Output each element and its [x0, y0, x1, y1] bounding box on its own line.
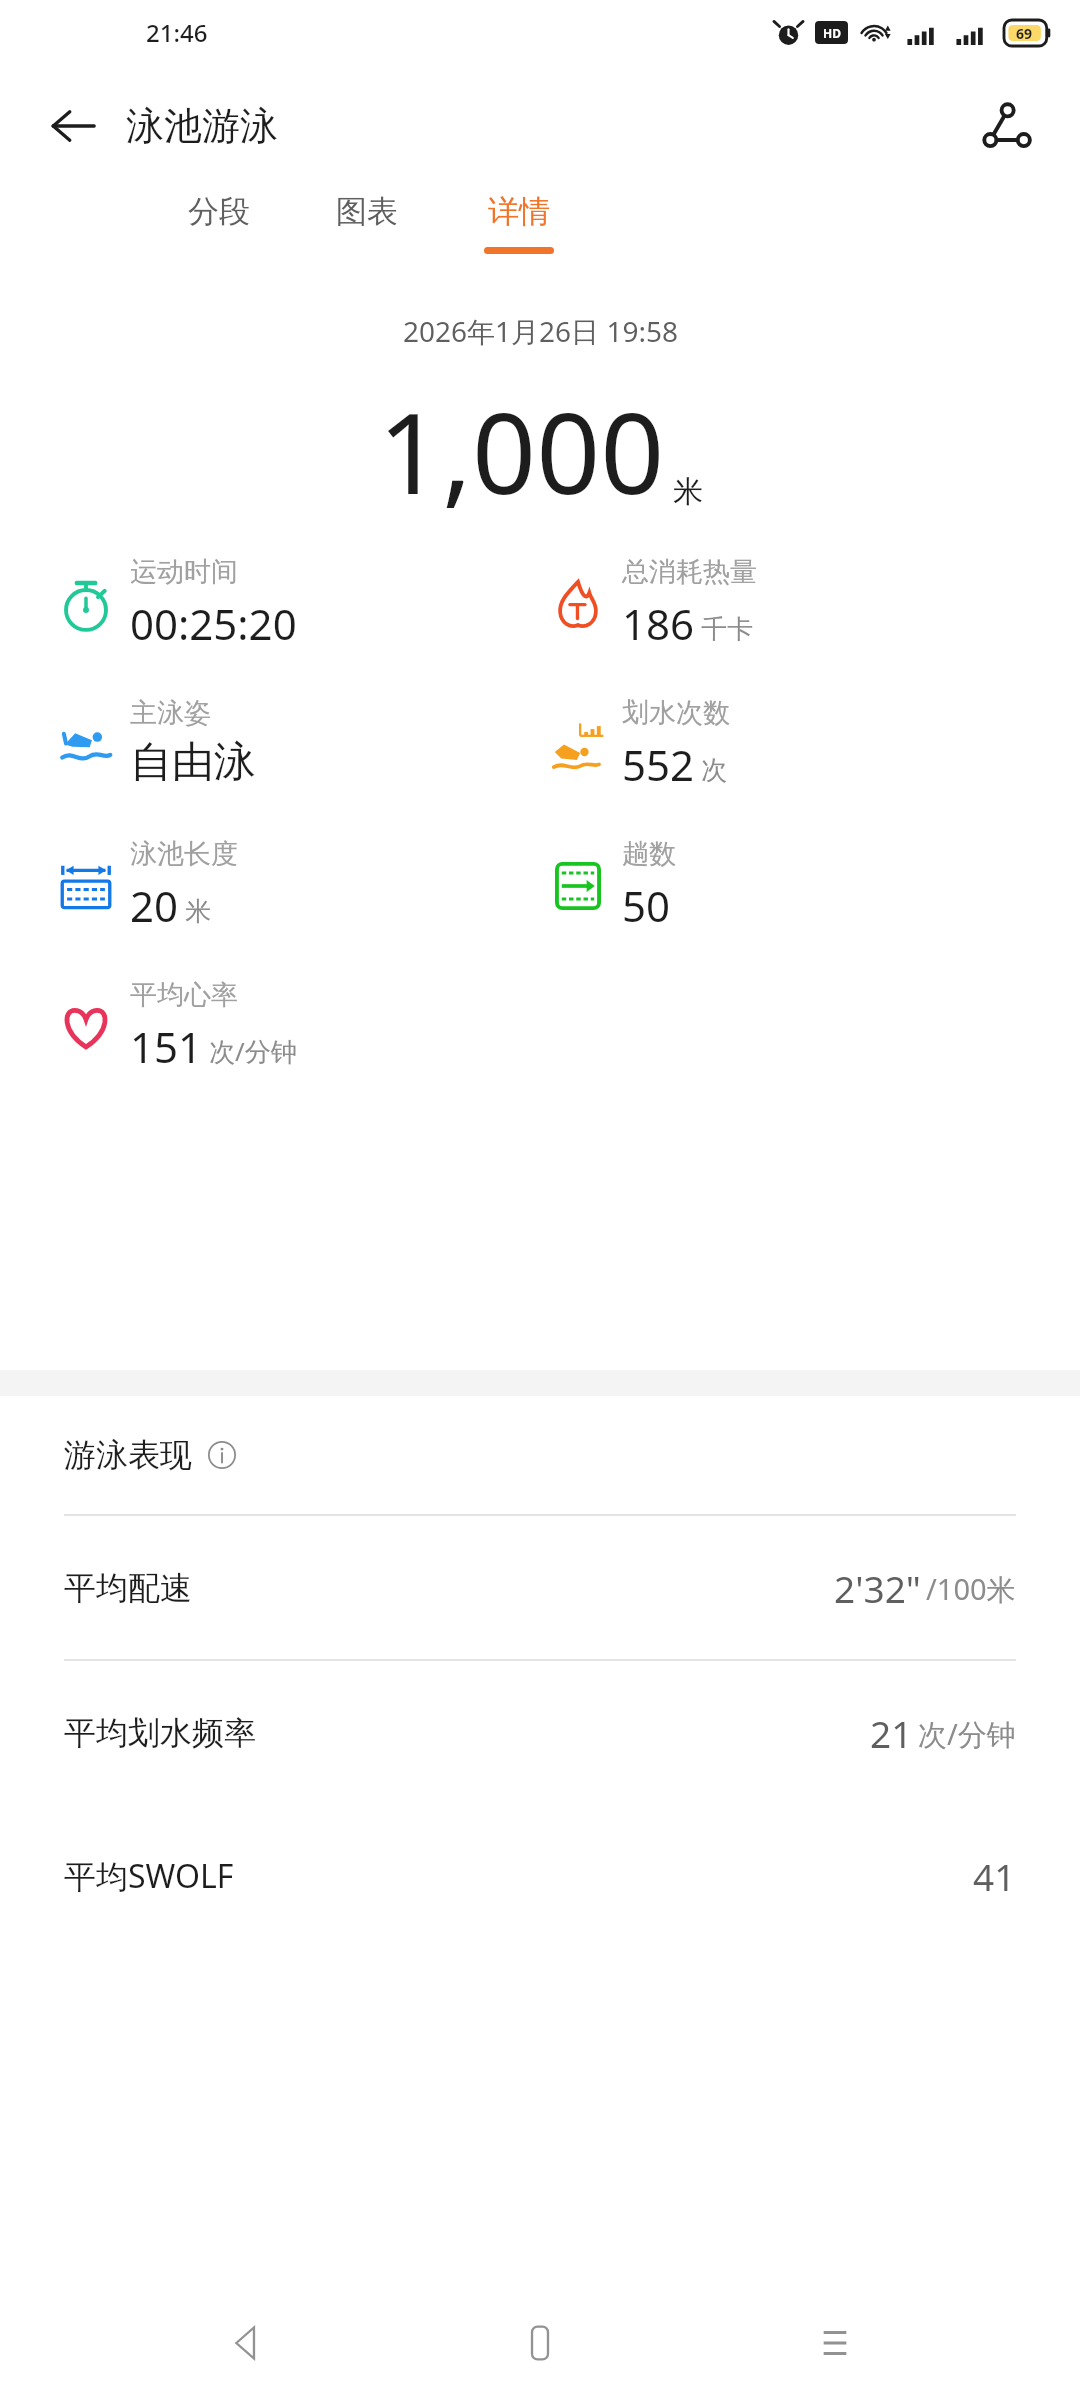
staticText: 游泳表现 [64, 1435, 192, 1475]
button[interactable]: 泳池长度 [54, 837, 238, 934]
staticText: 详情 [488, 192, 550, 231]
staticText: 米 [673, 473, 703, 511]
button[interactable]: Recent apps [786, 2294, 884, 2392]
button[interactable]: 平均配速 [0, 1514, 1080, 1659]
staticText: 次 [701, 754, 727, 787]
button[interactable]: Info [204, 1437, 240, 1473]
button[interactable]: Home [491, 2294, 589, 2392]
button[interactable]: 详情 [468, 188, 570, 258]
staticText: 次/分钟 [209, 1033, 297, 1069]
button[interactable]: 总消耗热量 [546, 555, 757, 652]
staticText: 2026年1月26日 19:58 [403, 312, 678, 350]
staticText: 50 [622, 877, 671, 934]
staticText: 图表 [336, 192, 398, 231]
button[interactable]: Back [38, 91, 108, 161]
staticText: 趟数 [622, 837, 676, 871]
button[interactable]: 图表 [320, 188, 414, 251]
staticText: 泳池长度 [130, 837, 238, 871]
button[interactable]: 趟数 [546, 837, 676, 934]
staticText: 泳池游泳 [126, 102, 278, 150]
staticText: 平均心率 [130, 978, 238, 1012]
staticText: 21 [870, 1708, 913, 1758]
staticText: 41 [973, 1851, 1016, 1901]
staticText: 运动时间 [130, 555, 238, 589]
staticText: 主泳姿 [130, 696, 211, 730]
button[interactable]: 主泳姿 [54, 696, 256, 789]
button[interactable]: Back [197, 2294, 295, 2392]
button[interactable]: 平均划水频率 [0, 1659, 1080, 1804]
staticText: 划水次数 [622, 696, 730, 730]
button[interactable]: 划水次数 [546, 696, 730, 793]
staticText: 69 [1016, 24, 1033, 43]
button[interactable]: 平均SWOLF [0, 1804, 1080, 1947]
staticText: 00:25:20 [130, 595, 297, 652]
staticText: HD [823, 25, 841, 41]
staticText: 186 [622, 595, 695, 652]
staticText: 自由泳 [130, 736, 256, 789]
staticText: 20 [130, 877, 179, 934]
staticText: 千卡 [701, 613, 753, 646]
staticText: 总消耗热量 [622, 555, 757, 589]
staticText: 次/分钟 [918, 1714, 1016, 1754]
staticText: 平均配速 [64, 1568, 192, 1608]
staticText: 分段 [188, 192, 250, 231]
staticText: 552 [622, 736, 695, 793]
button[interactable]: 平均心率 [54, 978, 297, 1075]
staticText: 米 [185, 895, 211, 928]
staticText: 1,000 [378, 374, 665, 527]
staticText: 平均划水频率 [64, 1713, 256, 1753]
staticText: 2'32" [834, 1563, 921, 1613]
button[interactable]: 运动时间 [54, 555, 297, 652]
staticText: 平均SWOLF [64, 1854, 234, 1898]
button[interactable]: Share [970, 90, 1042, 162]
staticText: 21:46 [146, 16, 208, 49]
staticText: 151 [130, 1018, 203, 1075]
staticText: /100米 [926, 1569, 1016, 1609]
button[interactable]: 分段 [172, 188, 266, 251]
